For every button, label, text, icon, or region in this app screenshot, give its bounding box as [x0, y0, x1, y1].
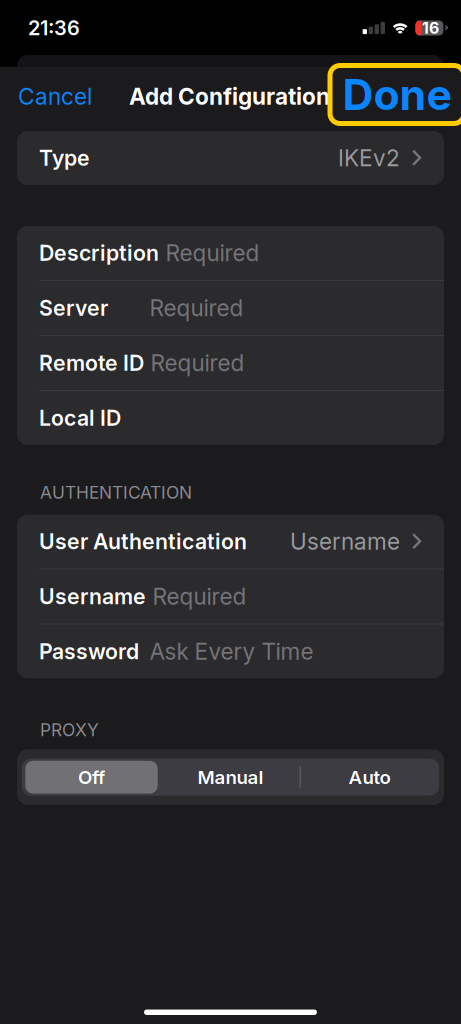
- button[interactable]: Cancel: [18, 77, 92, 121]
- staticText: 21:36: [28, 16, 80, 40]
- button[interactable]: Auto: [300, 759, 439, 796]
- button[interactable]: Username: [17, 569, 444, 623]
- button[interactable]: Server: [17, 281, 444, 335]
- staticText: Ask Every Time: [149, 638, 313, 665]
- button[interactable]: Local ID: [17, 391, 444, 445]
- staticText: Required: [152, 583, 246, 610]
- staticText: Manual: [197, 766, 263, 788]
- staticText: User Authentication: [39, 529, 247, 554]
- staticText: Username: [290, 528, 400, 555]
- staticText: Auto: [348, 766, 390, 788]
- staticText: IKEv2: [338, 144, 400, 172]
- staticText: 16: [422, 18, 439, 38]
- button[interactable]: Done: [335, 73, 457, 125]
- button[interactable]: Type: [17, 131, 444, 185]
- staticText: Remote ID: [39, 350, 144, 376]
- button[interactable]: Description: [17, 226, 444, 280]
- staticText: Type: [39, 145, 90, 171]
- staticText: Off: [78, 766, 105, 788]
- staticText: Description: [39, 240, 159, 266]
- button[interactable]: Password: [17, 624, 444, 678]
- button[interactable]: Manual: [161, 759, 300, 796]
- button[interactable]: Off: [22, 759, 161, 796]
- staticText: Server: [39, 295, 108, 321]
- staticText: Password: [39, 639, 139, 664]
- staticText: Required: [149, 294, 243, 322]
- button[interactable]: Remote ID: [17, 336, 444, 390]
- staticText: AUTHENTICATION: [40, 482, 192, 503]
- staticText: Username: [39, 584, 146, 609]
- staticText: Required: [150, 349, 244, 377]
- staticText: Cancel: [18, 83, 92, 110]
- staticText: Add Configuration: [129, 83, 330, 110]
- staticText: Local ID: [39, 405, 121, 431]
- staticText: Done: [342, 69, 451, 120]
- staticText: PROXY: [40, 719, 99, 740]
- button[interactable]: User Authentication: [17, 514, 444, 568]
- staticText: Required: [165, 239, 259, 267]
